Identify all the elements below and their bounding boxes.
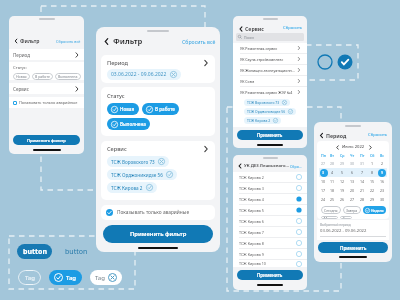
button[interactable]: УК Жилищно-эксплуатационн... <box>240 65 301 75</box>
button[interactable]: Сегодня <box>324 206 338 214</box>
button[interactable]: Применить фильтр <box>103 225 213 243</box>
button[interactable]: Применить <box>237 130 303 140</box>
staticText: Поиск <box>244 35 255 40</box>
button[interactable]: Период <box>107 59 210 67</box>
staticText: Применить фильтр <box>27 138 66 143</box>
staticText: ТСЖ Кирова 2 <box>239 175 296 180</box>
button[interactable]: ТСЖ Кирова 2 <box>247 117 278 124</box>
button[interactable]: ТСЖ Орджоникидзе 56 <box>111 169 173 180</box>
button[interactable]: Год <box>343 216 349 219</box>
button[interactable]: Применить <box>237 270 303 280</box>
button[interactable]: Применить <box>318 242 388 253</box>
button[interactable]: ТСЖ Кирова 2 <box>239 172 302 182</box>
staticText: 17 <box>321 188 326 193</box>
button[interactable]: УК Союз <box>240 76 301 86</box>
button[interactable]: Месяц <box>324 216 335 219</box>
staticText: 26 <box>340 197 345 202</box>
button[interactable]: Tag <box>54 270 77 285</box>
button[interactable]: Сбросить всё <box>56 39 81 44</box>
staticText: ТСЖ Воровского 73 <box>111 159 155 165</box>
button[interactable]: ТСЖ Кирова 3 <box>239 183 302 193</box>
staticText: Пн <box>321 153 326 158</box>
staticText: 21 <box>360 188 365 193</box>
staticText: button <box>23 247 47 257</box>
button[interactable]: Выполнена <box>58 73 78 80</box>
button[interactable]: button <box>17 244 52 259</box>
staticText: 2 <box>381 161 384 166</box>
staticText: Выполнена <box>58 74 78 79</box>
button[interactable]: Previous month <box>334 144 340 150</box>
staticText: 03.06.2022 - 09.06.2022 <box>320 228 367 234</box>
staticText: Фильтр <box>113 36 143 46</box>
staticText: УК Жилищно-эксплуатационн... <box>240 68 297 73</box>
staticText: ТСЖ Орджоникидзе 56 <box>247 109 286 114</box>
button[interactable]: Back <box>237 163 243 169</box>
staticText: 27 <box>350 197 355 202</box>
staticText: Выбранный период <box>320 223 351 227</box>
button[interactable]: ТСЖ Воровского 73 <box>111 156 165 167</box>
button[interactable]: Неделя <box>365 206 384 214</box>
staticText: Ср <box>340 153 345 158</box>
button[interactable]: УК Сауна-стройкомплекс <box>240 54 301 64</box>
button[interactable]: ТСЖ Кирова 6 <box>239 216 302 226</box>
staticText: 6 <box>351 170 354 175</box>
button[interactable]: Сбросить <box>368 132 388 138</box>
staticText: Сбросить <box>283 25 303 31</box>
staticText: 9 <box>381 170 384 175</box>
button[interactable]: Выполнена <box>111 118 146 130</box>
staticText: 5 <box>341 170 344 175</box>
staticText: УК Ремонтная-сервис ЖЭУ №4 <box>240 90 297 95</box>
staticText: Период <box>326 132 347 139</box>
staticText: ТСЖ Орджоникидзе 56 <box>111 172 163 178</box>
button[interactable]: В работе <box>146 103 175 115</box>
button[interactable]: ТСЖ Кирова 2 <box>111 182 153 193</box>
button[interactable]: УК Ремонтная-сервис <box>240 43 301 53</box>
button[interactable]: Back <box>13 38 19 44</box>
button[interactable]: Новая <box>16 73 27 80</box>
staticText: 7 <box>361 170 364 175</box>
button[interactable]: Tag <box>95 270 117 285</box>
button[interactable]: Back <box>237 25 244 32</box>
button[interactable]: Поиск <box>238 33 302 41</box>
button[interactable]: ТСЖ Кирова 4 <box>239 194 302 204</box>
button[interactable]: Tag <box>18 270 41 285</box>
button[interactable]: ТСЖ Кирова 10 <box>239 260 302 267</box>
button[interactable]: ТСЖ Кирова 5 <box>239 205 302 215</box>
button[interactable]: 03.06.2022 - 09.06.2022 <box>111 69 177 80</box>
button[interactable]: В работе <box>35 73 50 80</box>
button[interactable]: ТСЖ Кирова 9 <box>239 249 302 259</box>
button[interactable]: ТСЖ Кирова 7 <box>239 227 302 237</box>
button[interactable]: Next month <box>367 144 373 150</box>
button[interactable]: ТСЖ Кирова 8 <box>239 238 302 248</box>
button[interactable]: Back <box>102 37 111 46</box>
button[interactable]: Новая <box>111 103 135 115</box>
button[interactable]: Применить фильтр <box>13 135 80 145</box>
button[interactable]: button <box>65 247 88 257</box>
staticText: 18 <box>330 188 335 193</box>
staticText: ТСЖ Кирова 7 <box>239 230 296 235</box>
button[interactable]: Показывать только аварийные <box>9 97 84 108</box>
button[interactable]: УК Ремонтная-сервис ЖЭУ №4 <box>240 87 301 97</box>
staticText: 27 <box>321 161 326 166</box>
button[interactable]: Unselected option <box>317 54 333 70</box>
button[interactable]: ТСЖ Воровского 73 <box>247 99 287 106</box>
staticText: УК Ремонтная-сервис <box>240 46 297 51</box>
staticText: 13 <box>350 179 355 184</box>
button[interactable]: Сбросить <box>290 164 303 169</box>
button[interactable]: Selected option <box>337 54 353 70</box>
staticText: 8 <box>371 170 374 175</box>
staticText: Новая <box>16 74 27 79</box>
staticText: Неделя <box>371 208 384 213</box>
button[interactable]: Сервис <box>107 145 210 153</box>
button[interactable]: Сбросить <box>283 25 303 31</box>
staticText: 12 <box>340 179 345 184</box>
button[interactable]: Back <box>318 132 325 139</box>
staticText: button <box>65 247 88 257</box>
button[interactable]: Сбросить всё <box>182 38 216 45</box>
button[interactable]: Период <box>9 49 84 60</box>
button[interactable]: ТСЖ Орджоникидзе 56 <box>247 108 293 115</box>
staticText: Сбросить всё <box>56 39 81 44</box>
staticText: 19 <box>340 188 345 193</box>
button[interactable]: Сервис <box>9 83 84 94</box>
button[interactable]: Завтра <box>346 206 358 214</box>
